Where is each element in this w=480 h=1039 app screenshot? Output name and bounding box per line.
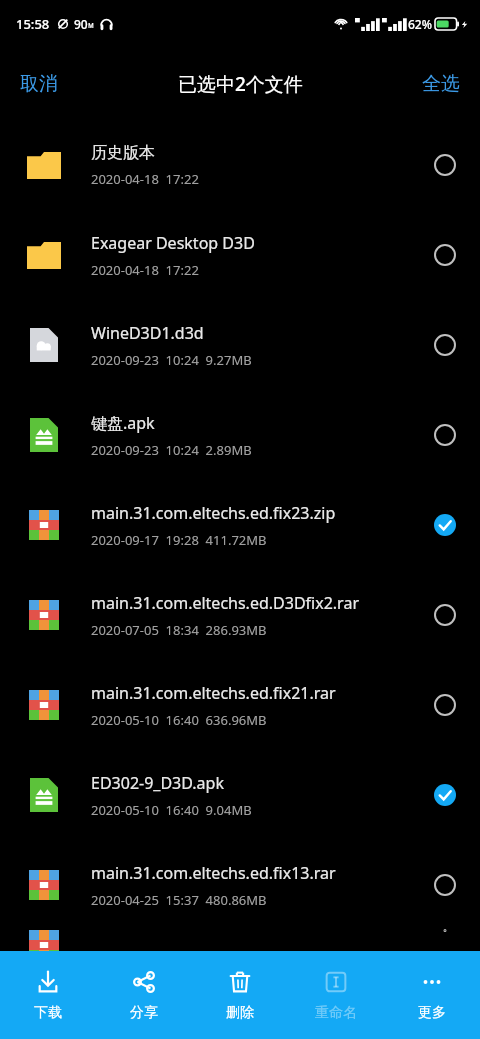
staticText: 62% bbox=[408, 16, 432, 32]
staticText: main.31.com.eltechs.ed.fix13.rar bbox=[91, 862, 336, 884]
staticText: 2020-05-10 16:40 636.96MB bbox=[91, 711, 267, 729]
button[interactable]: main.31.com.eltechs.ed.D3Dfix.rar bbox=[0, 930, 480, 931]
button[interactable]: Not selected bbox=[418, 588, 472, 642]
button[interactable]: Not selected bbox=[418, 408, 472, 462]
staticText: 2020-09-23 10:24 2.89MB bbox=[91, 441, 252, 459]
staticText: main.31.com.eltechs.ed.fix21.rar bbox=[91, 682, 336, 704]
button[interactable]: Not selected bbox=[418, 138, 472, 192]
button[interactable]: Not selected bbox=[418, 858, 472, 912]
button[interactable]: 删除 bbox=[192, 951, 288, 1039]
button[interactable]: 重命名 bbox=[288, 951, 384, 1039]
staticText: main.31.com.eltechs.ed.fix23.zip bbox=[91, 502, 336, 524]
button[interactable]: Exagear Desktop D3D bbox=[0, 210, 480, 300]
staticText: main.31.com.eltechs.ed.D3Dfix2.rar bbox=[91, 592, 359, 614]
button[interactable]: Not selected bbox=[418, 930, 472, 931]
staticText: 全选 bbox=[422, 72, 460, 96]
button[interactable]: Selected bbox=[418, 498, 472, 552]
staticText: Exagear Desktop D3D bbox=[91, 232, 255, 254]
button[interactable]: main.31.com.eltechs.ed.fix23.zip bbox=[0, 480, 480, 570]
button[interactable]: 更多 bbox=[384, 951, 480, 1039]
button[interactable]: main.31.com.eltechs.ed.fix13.rar bbox=[0, 840, 480, 930]
button[interactable]: WineD3D1.d3d bbox=[0, 300, 480, 390]
button[interactable]: Not selected bbox=[418, 318, 472, 372]
button[interactable]: 历史版本 bbox=[0, 120, 480, 210]
button[interactable]: ED302-9_D3D.apk bbox=[0, 750, 480, 840]
button[interactable]: 键盘.apk bbox=[0, 390, 480, 480]
staticText: ED302-9_D3D.apk bbox=[91, 772, 224, 794]
staticText: 更多 bbox=[418, 1004, 446, 1022]
button[interactable]: Selected bbox=[418, 768, 472, 822]
button[interactable]: Not selected bbox=[418, 678, 472, 732]
staticText: WineD3D1.d3d bbox=[91, 322, 204, 344]
button[interactable]: Not selected bbox=[418, 228, 472, 282]
staticText: 2020-05-10 16:40 9.04MB bbox=[91, 801, 252, 819]
staticText: 下载 bbox=[34, 1004, 62, 1022]
staticText: 2020-07-05 18:34 286.93MB bbox=[91, 621, 267, 639]
staticText: 2020-04-25 15:37 480.86MB bbox=[91, 891, 267, 909]
staticText: ᴍ bbox=[88, 19, 94, 30]
staticText: 键盘.apk bbox=[91, 412, 155, 434]
button[interactable]: 下载 bbox=[0, 951, 96, 1039]
staticText: 2020-09-23 10:24 9.27MB bbox=[91, 351, 252, 369]
staticText: 取消 bbox=[20, 72, 58, 96]
staticText: 历史版本 bbox=[91, 143, 155, 163]
staticText: 15:58 bbox=[16, 15, 50, 33]
staticText: 已选中2个文件 bbox=[178, 71, 303, 97]
button[interactable]: 分享 bbox=[96, 951, 192, 1039]
staticText: 删除 bbox=[226, 1004, 254, 1022]
staticText: 2020-09-17 19:28 411.72MB bbox=[91, 531, 267, 549]
staticText: 重命名 bbox=[315, 1004, 357, 1022]
button[interactable]: main.31.com.eltechs.ed.fix21.rar bbox=[0, 660, 480, 750]
staticText: 2020-04-18 17:22 bbox=[91, 261, 199, 279]
button[interactable]: main.31.com.eltechs.ed.D3Dfix2.rar bbox=[0, 570, 480, 660]
button[interactable]: 全选 bbox=[410, 64, 472, 104]
button[interactable]: 取消 bbox=[8, 64, 70, 104]
staticText: 90 bbox=[74, 16, 88, 32]
staticText: 分享 bbox=[130, 1004, 158, 1022]
staticText: 2020-04-18 17:22 bbox=[91, 170, 199, 188]
